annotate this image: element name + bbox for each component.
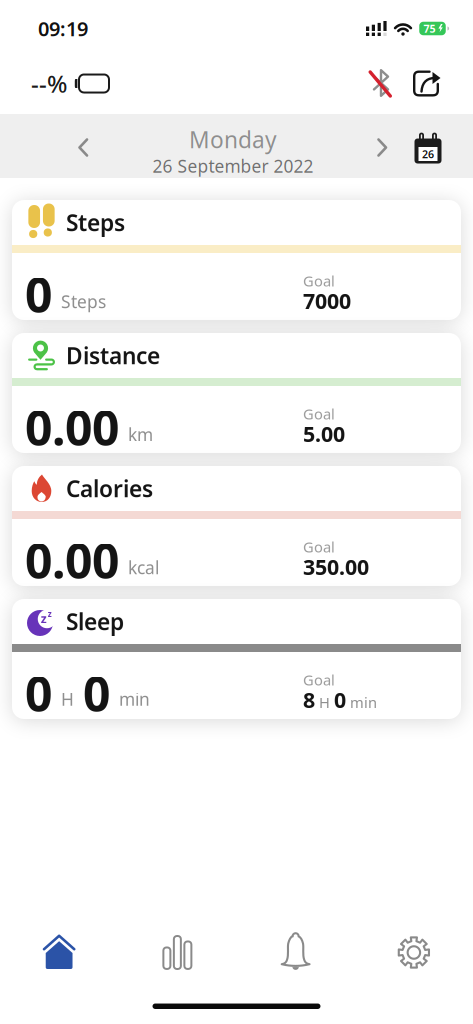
staticText: Goal bbox=[303, 404, 335, 424]
button[interactable]: Choose date bbox=[414, 131, 473, 161]
button[interactable]: Next day bbox=[357, 137, 414, 155]
staticText: --% bbox=[31, 68, 67, 99]
staticText: 0 bbox=[25, 661, 52, 725]
staticText: 0 bbox=[334, 686, 346, 714]
staticText: 0 bbox=[83, 661, 110, 725]
staticText: kcal bbox=[128, 556, 159, 579]
staticText: 26 September 2022 bbox=[152, 154, 313, 177]
staticText: 26 bbox=[422, 147, 434, 161]
button[interactable]: Home bbox=[0, 935, 118, 970]
staticText: 0.00 bbox=[25, 395, 119, 459]
staticText: 350.00 bbox=[303, 553, 369, 581]
button[interactable]: Statistics bbox=[118, 935, 236, 969]
button[interactable]: Settings bbox=[355, 935, 473, 970]
staticText: Sleep bbox=[66, 606, 124, 636]
staticText: 75 bbox=[423, 21, 435, 36]
staticText: Goal bbox=[303, 670, 335, 690]
staticText: Steps bbox=[61, 290, 106, 313]
staticText: 09:19 bbox=[38, 15, 88, 42]
staticText: 8 bbox=[303, 686, 315, 714]
staticText: min bbox=[119, 687, 150, 710]
staticText: 5.00 bbox=[303, 420, 345, 448]
staticText: Distance bbox=[66, 340, 160, 370]
staticText: z bbox=[48, 609, 52, 619]
staticText: H bbox=[61, 687, 74, 710]
staticText: 0 bbox=[25, 262, 52, 326]
staticText: Monday bbox=[189, 124, 277, 154]
staticText: 7000 bbox=[303, 287, 351, 315]
button[interactable]: Share bbox=[392, 70, 473, 96]
staticText: Steps bbox=[66, 207, 125, 237]
staticText: min bbox=[350, 692, 377, 712]
button[interactable]: Previous day bbox=[0, 137, 109, 155]
staticText: H bbox=[319, 692, 330, 712]
staticText: z bbox=[41, 611, 47, 627]
staticText: 0.00 bbox=[25, 528, 119, 592]
staticText: Calories bbox=[66, 473, 153, 503]
staticText: km bbox=[128, 423, 153, 446]
staticText: Goal bbox=[303, 271, 335, 291]
button[interactable]: Notifications bbox=[236, 933, 355, 972]
staticText: Goal bbox=[303, 537, 335, 557]
